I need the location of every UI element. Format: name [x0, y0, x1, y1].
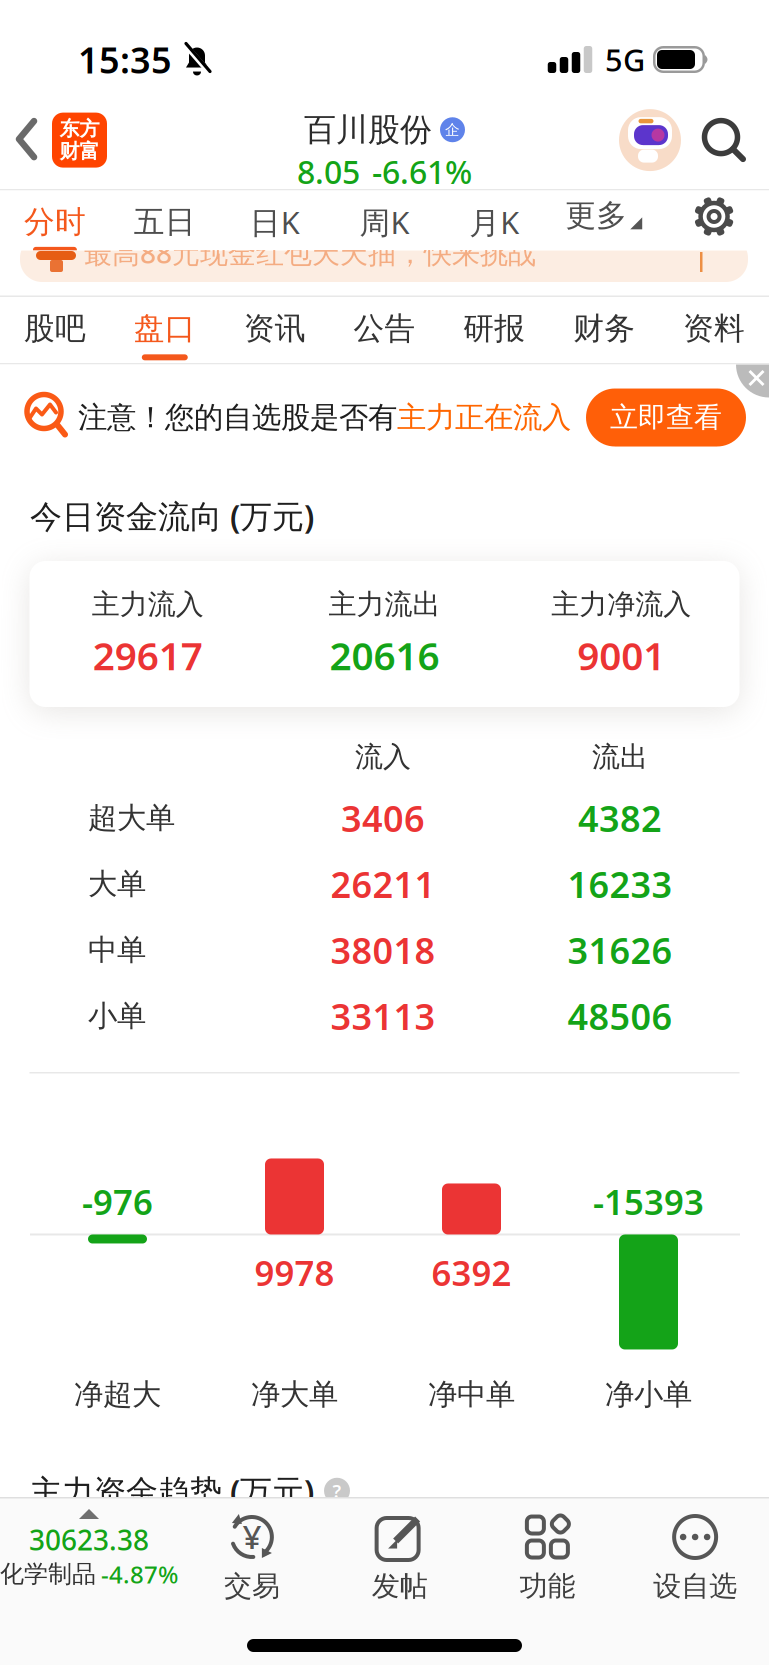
staticText: 33113: [330, 992, 435, 1040]
staticText: 净超大: [74, 1376, 161, 1412]
staticText: 股吧: [24, 310, 86, 347]
staticText: 16233: [567, 860, 672, 908]
button[interactable]: 更多: [549, 197, 659, 244]
staticText: 大单: [88, 866, 146, 902]
button[interactable]: 日K: [220, 187, 330, 254]
staticText: 分时: [24, 203, 86, 241]
staticText: 财富: [59, 139, 99, 164]
button[interactable]: 交易: [178, 1497, 326, 1603]
staticText: 流出: [592, 740, 648, 774]
staticText: 小单: [88, 998, 146, 1034]
button[interactable]: 股吧: [0, 300, 110, 360]
button[interactable]: 公告: [330, 300, 439, 360]
staticText: ?: [332, 1478, 341, 1503]
staticText: -976: [82, 1178, 153, 1224]
staticText: 26211: [330, 860, 435, 908]
button[interactable]: 周K: [330, 187, 439, 254]
staticText: 研报: [463, 310, 525, 347]
button[interactable]: 设自选: [621, 1497, 769, 1603]
staticText: 发帖: [372, 1569, 428, 1603]
button[interactable]: 盘口: [110, 300, 220, 360]
staticText: 日K: [250, 202, 300, 242]
staticText: ¥: [242, 1514, 261, 1558]
staticText: 今日资金流向 (万元): [30, 494, 314, 537]
staticText: 中单: [88, 932, 146, 968]
staticText: 财务: [573, 310, 635, 347]
staticText: 8.05: [297, 150, 360, 193]
staticText: 48506: [567, 992, 672, 1040]
staticText: 资讯: [244, 310, 306, 347]
staticText: 4382: [578, 794, 662, 842]
staticText: 超大单: [88, 800, 175, 836]
button[interactable]: 研报: [439, 300, 549, 360]
button[interactable]: Search: [681, 117, 769, 163]
staticText: 38018: [330, 926, 435, 974]
staticText: 更多: [565, 197, 627, 234]
button[interactable]: 立即查看: [586, 388, 769, 446]
button[interactable]: 东方财富: [46, 113, 107, 168]
staticText: 31626: [567, 926, 672, 974]
staticText: 周K: [359, 202, 409, 242]
staticText: 五日: [134, 203, 196, 241]
staticText: 9001: [577, 629, 665, 681]
staticText: 百川股份: [304, 110, 432, 149]
staticText: 盘口: [134, 310, 196, 347]
staticText: 东方: [59, 116, 99, 141]
staticText: 净小单: [605, 1376, 692, 1412]
staticText: 5G: [605, 39, 645, 80]
button[interactable]: 财务: [549, 300, 659, 360]
staticText: 主力流入: [92, 587, 204, 621]
button[interactable]: 五日: [110, 188, 220, 253]
staticText: 20616: [329, 629, 439, 681]
staticText: 化学制品: [0, 1559, 96, 1589]
button[interactable]: 资料: [659, 300, 769, 360]
button[interactable]: 功能: [473, 1497, 621, 1603]
staticText: 流入: [355, 740, 411, 774]
button[interactable]: 30623.38: [0, 1497, 178, 1590]
staticText: 30623.38: [29, 1521, 149, 1558]
button[interactable]: 月K: [439, 187, 549, 254]
staticText: 功能: [519, 1569, 575, 1603]
staticText: 主力资金趋势 (万元): [30, 1469, 314, 1512]
staticText: 最高88元现金红包天天抽，快来挑战: [84, 234, 536, 271]
staticText: 立即查看: [610, 400, 722, 435]
staticText: 月K: [469, 202, 519, 242]
staticText: 设自选: [653, 1569, 737, 1603]
staticText: 3406: [341, 794, 425, 842]
button[interactable]: 分时: [0, 188, 110, 253]
staticText: -6.61%: [372, 150, 472, 193]
staticText: 6392: [431, 1249, 511, 1295]
button[interactable]: 发帖: [326, 1497, 474, 1603]
staticText: 资料: [683, 310, 745, 347]
staticText: 主力流出: [328, 587, 440, 621]
staticText: 净大单: [251, 1376, 338, 1412]
staticText: 公告: [353, 310, 415, 347]
staticText: 主力净流入: [551, 587, 691, 621]
staticText: 净中单: [428, 1376, 515, 1412]
staticText: 主力正在流入: [397, 399, 571, 435]
staticText: 15:35: [78, 36, 172, 83]
staticText: 注意！您的自选股是否有: [78, 399, 397, 435]
staticText: 29617: [93, 629, 203, 681]
staticText: 9978: [254, 1249, 334, 1295]
staticText: -15393: [593, 1178, 704, 1224]
button[interactable]: Chart settings: [659, 194, 769, 246]
staticText: -4.87%: [101, 1558, 178, 1590]
button[interactable]: Back: [0, 117, 46, 163]
button[interactable]: 资讯: [220, 300, 330, 360]
staticText: 交易: [224, 1569, 280, 1603]
button[interactable]: Close: [736, 364, 769, 397]
button[interactable]: AI assistant: [619, 109, 681, 171]
staticText: 企: [445, 121, 460, 139]
